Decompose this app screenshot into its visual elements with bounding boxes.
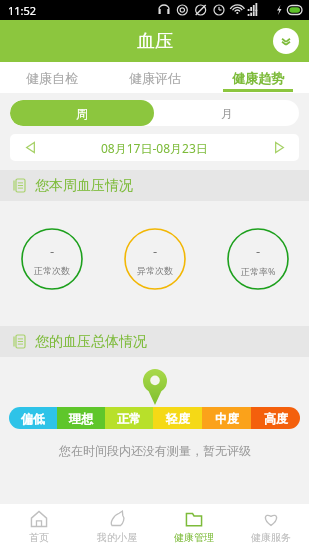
staticText: - <box>50 242 55 260</box>
button[interactable]: Next <box>259 134 299 161</box>
staticText: 首页 <box>29 531 49 544</box>
button[interactable]: 首页 <box>0 504 78 550</box>
staticText: 中度 <box>215 411 239 426</box>
staticText: - <box>153 242 158 260</box>
staticText: - <box>256 242 261 260</box>
staticText: 正常 <box>117 411 141 426</box>
button[interactable]: 健康评估 <box>103 62 206 93</box>
staticText: 您本周血压情况 <box>35 177 133 195</box>
button[interactable]: 高度 <box>251 407 300 429</box>
button[interactable]: 周 <box>10 100 154 126</box>
staticText: 血压 <box>137 30 173 53</box>
staticText: 我的小屋 <box>97 531 137 544</box>
staticText: 健康管理 <box>174 531 214 544</box>
staticText: 健康自检 <box>26 70 78 86</box>
button[interactable]: Expand <box>273 28 299 54</box>
staticText: 理想 <box>69 411 93 426</box>
staticText: 您在时间段内还没有测量，暂无评级 <box>59 443 251 458</box>
staticText: 健康评估 <box>129 70 181 86</box>
button[interactable]: 月 <box>154 100 299 126</box>
staticText: 健康服务 <box>251 531 291 544</box>
button[interactable]: 健康管理 <box>155 504 232 550</box>
staticText: 偏低 <box>21 411 45 426</box>
button[interactable]: 健康服务 <box>232 504 309 550</box>
staticText: 正常率% <box>241 265 276 277</box>
staticText: 轻度 <box>166 411 190 426</box>
staticText: 周 <box>76 106 88 121</box>
staticText: 正常次数 <box>34 265 70 276</box>
staticText: 高度 <box>264 411 288 426</box>
button[interactable]: 理想 <box>57 407 105 429</box>
staticText: 月 <box>221 106 233 121</box>
button[interactable]: Previous <box>10 134 50 161</box>
staticText: 11:52 <box>8 3 37 18</box>
button[interactable]: 健康趋势 <box>206 62 309 93</box>
button[interactable]: 我的小屋 <box>78 504 155 550</box>
button[interactable]: 轻度 <box>153 407 202 429</box>
staticText: 您的血压总体情况 <box>35 333 147 351</box>
staticText: 健康趋势 <box>232 70 284 86</box>
staticText: 08月17日-08月23日 <box>101 140 208 156</box>
button[interactable]: 中度 <box>202 407 251 429</box>
button[interactable]: 健康自检 <box>0 62 103 93</box>
button[interactable]: 偏低 <box>9 407 57 429</box>
button[interactable]: 正常 <box>105 407 153 429</box>
staticText: 异常次数 <box>137 265 173 276</box>
